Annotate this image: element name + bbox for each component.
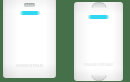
staticText: GRANDSTREAM (84, 62, 113, 67)
button[interactable]: Right access point panel (74, 2, 123, 81)
staticText: GRANDSTREAM (16, 64, 43, 68)
button[interactable]: Left access point panel (3, 0, 56, 78)
